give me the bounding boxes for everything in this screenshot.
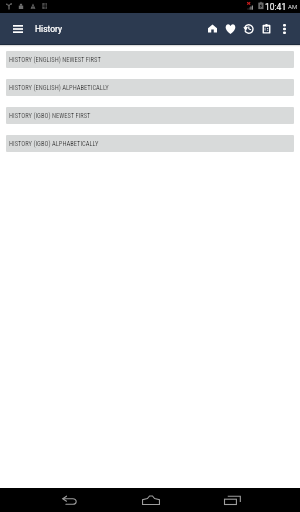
button[interactable]: Recent apps [192, 488, 272, 512]
button[interactable]: HISTORY (ENGLISH) ALPHABETICALLY [6, 79, 294, 96]
staticText: HISTORY (ENGLISH) ALPHABETICALLY [9, 84, 109, 92]
button[interactable]: More options [275, 13, 293, 44]
button[interactable]: HISTORY (IGBO) ALPHABETICALLY [6, 135, 294, 152]
button[interactable]: Home [110, 488, 192, 512]
staticText: 10:41 [265, 2, 287, 12]
button[interactable]: Back [28, 488, 110, 512]
staticText: HISTORY (IGBO) NEWEST FIRST [9, 112, 91, 120]
button[interactable]: History [239, 13, 257, 44]
button[interactable]: HISTORY (IGBO) NEWEST FIRST [6, 107, 294, 124]
staticText: AM [288, 3, 298, 10]
staticText: History [35, 24, 63, 34]
staticText: HISTORY (ENGLISH) NEWEST FIRST [9, 56, 101, 64]
button[interactable]: Home [203, 13, 221, 44]
staticText: HISTORY (IGBO) ALPHABETICALLY [9, 140, 99, 148]
button[interactable]: HISTORY (ENGLISH) NEWEST FIRST [6, 51, 294, 68]
button[interactable]: Notes [257, 13, 275, 44]
button[interactable]: Navigation menu [0, 13, 35, 44]
button[interactable]: Favorites [221, 13, 239, 44]
